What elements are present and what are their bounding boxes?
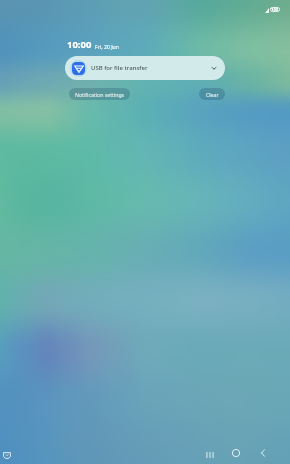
button[interactable]: Back [256, 446, 270, 460]
button[interactable]: Recents [203, 448, 217, 462]
staticText: Notification settings [75, 91, 125, 98]
button[interactable]: Home [229, 446, 243, 460]
button[interactable]: Notification settings [69, 88, 130, 100]
button[interactable]: USB for file transfer [65, 56, 225, 80]
staticText: USB for file transfer [91, 64, 148, 72]
button[interactable]: Hide keyboard [3, 452, 11, 459]
staticText: Clear [206, 91, 219, 98]
button[interactable]: Clear [199, 88, 225, 100]
staticText: 100 [271, 7, 279, 12]
staticText: Fri, 20 Jun [95, 43, 120, 50]
staticText: 10:00 [67, 38, 92, 51]
